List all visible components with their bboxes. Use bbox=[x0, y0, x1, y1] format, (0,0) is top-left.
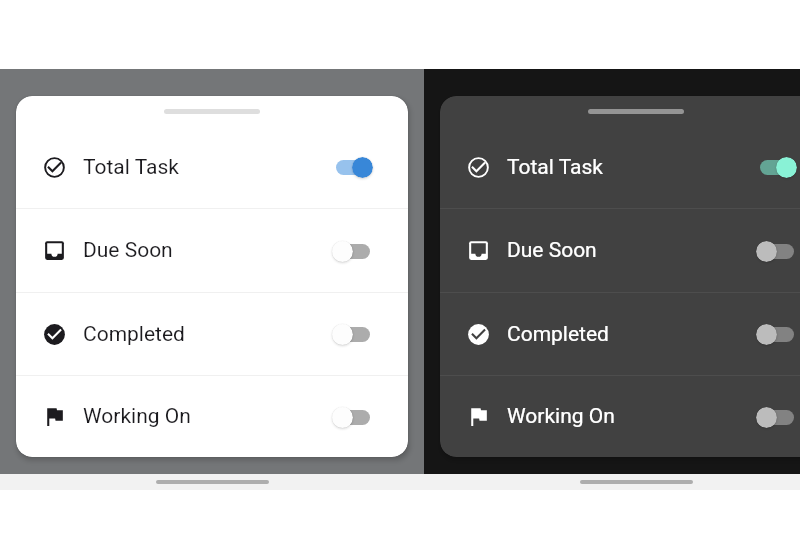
button[interactable]: Working On bbox=[16, 376, 408, 457]
button[interactable]: Toggle off bbox=[756, 321, 794, 347]
button[interactable]: Due Soon bbox=[440, 209, 800, 292]
button[interactable]: Toggle off bbox=[332, 321, 370, 347]
button[interactable]: Toggle off bbox=[756, 238, 794, 264]
button[interactable]: Toggle off bbox=[332, 238, 370, 264]
button[interactable]: Total Task bbox=[16, 126, 408, 208]
button[interactable]: Working On bbox=[440, 376, 800, 457]
staticText: Completed bbox=[507, 322, 609, 347]
button[interactable]: Due Soon bbox=[16, 209, 408, 292]
staticText: Due Soon bbox=[83, 238, 173, 263]
staticText: Total Task bbox=[83, 155, 179, 180]
staticText: Working On bbox=[83, 404, 191, 429]
staticText: Total Task bbox=[507, 155, 603, 180]
button[interactable]: Total Task bbox=[440, 126, 800, 208]
button[interactable]: Completed bbox=[16, 293, 408, 375]
staticText: Completed bbox=[83, 322, 185, 347]
button[interactable]: Toggle on bbox=[756, 154, 794, 180]
button[interactable]: Toggle on bbox=[332, 154, 370, 180]
staticText: Due Soon bbox=[507, 238, 597, 263]
button[interactable]: Completed bbox=[440, 293, 800, 375]
button[interactable]: Toggle off bbox=[332, 404, 370, 430]
staticText: Working On bbox=[507, 404, 615, 429]
button[interactable]: Toggle off bbox=[756, 404, 794, 430]
